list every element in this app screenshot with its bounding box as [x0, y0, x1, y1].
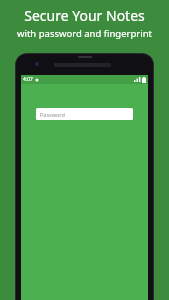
staticText: 4:07: [23, 76, 33, 83]
staticText: Password: [40, 111, 65, 118]
staticText: with password and fingerprint: [17, 27, 152, 40]
button[interactable]: Password: [36, 108, 133, 120]
staticText: Secure Your Notes: [24, 6, 145, 25]
